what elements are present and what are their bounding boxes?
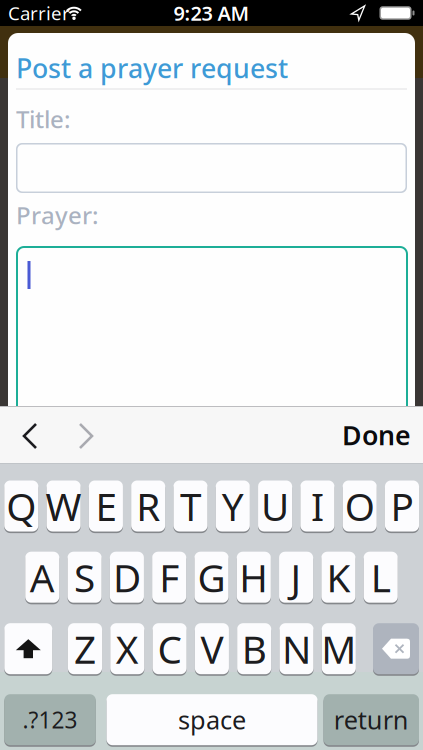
button[interactable]: H bbox=[237, 552, 271, 603]
staticText: Done bbox=[342, 417, 411, 453]
staticText: D bbox=[113, 551, 141, 603]
staticText: U bbox=[261, 480, 289, 532]
button[interactable]: N bbox=[279, 623, 313, 674]
staticText: I bbox=[311, 480, 324, 532]
button[interactable]: Q bbox=[4, 480, 38, 531]
button[interactable]: A bbox=[25, 552, 59, 603]
button[interactable]: D bbox=[110, 552, 144, 603]
staticText: T bbox=[180, 480, 201, 532]
button[interactable]: M bbox=[322, 623, 356, 674]
button[interactable]: Previous field bbox=[10, 416, 50, 456]
button[interactable]: Z bbox=[68, 623, 102, 674]
button[interactable]: C bbox=[152, 623, 187, 674]
button[interactable]: F bbox=[152, 552, 186, 603]
button[interactable]: Next field bbox=[66, 416, 106, 456]
staticText: R bbox=[136, 480, 160, 532]
button[interactable]: J bbox=[279, 552, 313, 603]
staticText: .?123 bbox=[22, 705, 77, 735]
staticText: Post a prayer request bbox=[16, 50, 288, 86]
staticText: V bbox=[200, 623, 223, 674]
staticText: Carrier bbox=[8, 1, 70, 25]
button[interactable]: O bbox=[343, 480, 377, 531]
staticText: S bbox=[74, 551, 95, 603]
button[interactable]: Done bbox=[331, 415, 411, 455]
staticText: M bbox=[321, 623, 356, 674]
staticText: Title: bbox=[16, 103, 71, 135]
staticText: J bbox=[291, 551, 302, 603]
button[interactable]: P bbox=[385, 480, 419, 531]
staticText: H bbox=[239, 551, 268, 603]
button[interactable]: .?123 bbox=[4, 694, 96, 745]
button[interactable]: S bbox=[67, 552, 102, 603]
button[interactable]: W bbox=[46, 480, 81, 531]
button[interactable]: G bbox=[194, 552, 228, 603]
staticText: Prayer: bbox=[16, 199, 99, 231]
button[interactable]: U bbox=[258, 480, 292, 531]
button[interactable]: L bbox=[364, 552, 398, 603]
staticText: B bbox=[242, 623, 267, 674]
button[interactable]: V bbox=[195, 623, 229, 674]
button[interactable]: R bbox=[131, 480, 165, 531]
button[interactable]: Y bbox=[216, 480, 250, 531]
staticText: 9:23 AM bbox=[173, 0, 249, 26]
button[interactable]: T bbox=[173, 480, 207, 531]
staticText: A bbox=[30, 551, 55, 603]
staticText: return bbox=[334, 703, 409, 736]
staticText: L bbox=[371, 551, 391, 603]
button[interactable]: return bbox=[323, 694, 419, 745]
staticText: W bbox=[46, 480, 82, 532]
staticText: F bbox=[159, 551, 179, 603]
staticText: N bbox=[282, 623, 311, 674]
button[interactable]: Shift bbox=[4, 623, 52, 674]
button[interactable]: Delete bbox=[373, 623, 419, 674]
staticText: K bbox=[326, 551, 350, 603]
button[interactable]: I bbox=[300, 480, 334, 531]
button[interactable]: X bbox=[110, 623, 144, 674]
staticText: G bbox=[197, 551, 225, 603]
staticText: C bbox=[158, 623, 182, 674]
button[interactable]: Prayer bbox=[16, 246, 408, 436]
button[interactable]: space bbox=[106, 694, 317, 745]
staticText: Y bbox=[222, 480, 244, 532]
staticText: space bbox=[178, 703, 246, 736]
staticText: P bbox=[390, 480, 413, 532]
staticText: Z bbox=[74, 623, 96, 674]
button[interactable]: Title bbox=[16, 143, 407, 193]
staticText: E bbox=[95, 480, 116, 532]
staticText: X bbox=[116, 623, 139, 674]
button[interactable]: B bbox=[237, 623, 271, 674]
button[interactable]: E bbox=[89, 480, 123, 531]
button[interactable]: K bbox=[321, 552, 355, 603]
staticText: O bbox=[345, 480, 375, 532]
staticText: Q bbox=[6, 480, 36, 532]
